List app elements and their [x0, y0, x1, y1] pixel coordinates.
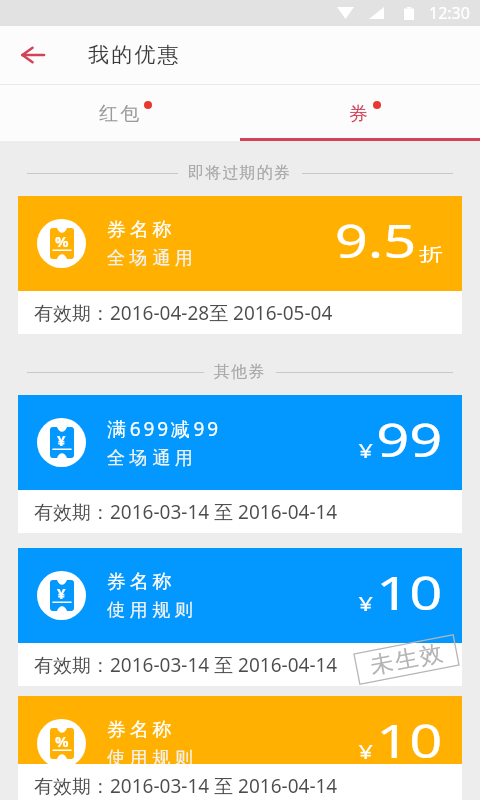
button[interactable]: 红包 [0, 85, 240, 138]
staticText: 券 [349, 102, 371, 126]
staticText: % [55, 231, 69, 251]
staticText: 券名称 [107, 718, 176, 742]
staticText: 红包 [99, 102, 142, 126]
staticText: 使用规则 [107, 747, 198, 770]
staticText: 12:30 [429, 2, 470, 24]
staticText: 券名称 [107, 570, 176, 594]
staticText: 未生效 [367, 638, 446, 681]
staticText: 折 [419, 243, 443, 267]
staticText: 有效期：2016-03-14 至 2016-04-14 [34, 652, 338, 678]
staticText: 9.5 [335, 209, 416, 272]
staticText: 我的优惠 [88, 42, 181, 68]
staticText: 其他券 [214, 362, 266, 382]
staticText: 10 [376, 561, 443, 624]
staticText: ¥ [359, 590, 374, 617]
button[interactable]: % [18, 196, 462, 334]
staticText: 全场通用 [107, 447, 198, 470]
staticText: 有效期：2016-04-28至 2016-05-04 [34, 300, 333, 326]
button[interactable]: ¥ [18, 395, 462, 533]
button[interactable]: 券 [240, 85, 480, 138]
button[interactable]: % [18, 701, 462, 785]
staticText: ¥ [57, 430, 66, 450]
staticText: 即将过期的券 [188, 163, 292, 183]
staticText: ¥ [359, 738, 374, 765]
staticText: 券名称 [107, 218, 176, 242]
staticText: 有效期：2016-03-14 至 2016-04-14 [34, 773, 338, 799]
staticText: 满699减99 [107, 416, 221, 442]
staticText: 99 [376, 408, 443, 471]
staticText: 使用规则 [107, 599, 198, 622]
staticText: 10 [376, 709, 443, 772]
button[interactable]: ¥ [18, 548, 462, 686]
staticText: 全场通用 [107, 247, 198, 270]
staticText: ¥ [57, 583, 66, 603]
staticText: 有效期：2016-03-14 至 2016-04-14 [34, 499, 338, 525]
staticText: % [55, 731, 69, 751]
button[interactable]: Back [0, 26, 66, 84]
staticText: ¥ [359, 437, 374, 464]
